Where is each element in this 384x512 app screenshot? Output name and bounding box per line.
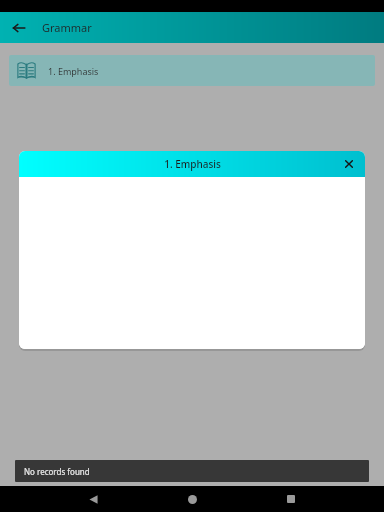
button[interactable]: Back xyxy=(6,15,32,41)
button[interactable]: Recents xyxy=(278,486,304,512)
button[interactable]: Close xyxy=(339,154,359,174)
button[interactable]: Back xyxy=(80,486,106,512)
staticText: Grammar xyxy=(42,20,92,35)
staticText: 1. Emphasis xyxy=(164,157,221,171)
button[interactable]: 1. Emphasis xyxy=(9,55,375,86)
staticText: 1. Emphasis xyxy=(48,65,99,77)
staticText: No records found xyxy=(24,466,90,477)
button[interactable]: No records found xyxy=(15,460,369,482)
button[interactable]: Home xyxy=(179,486,205,512)
